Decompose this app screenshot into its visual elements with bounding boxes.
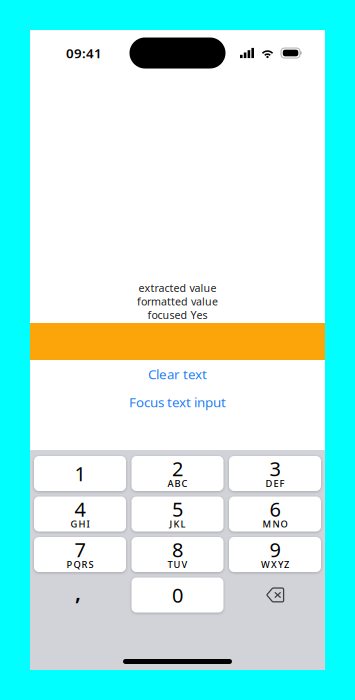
button[interactable]: 2 [131,456,223,491]
button[interactable]: Clear text [30,360,325,388]
button[interactable]: 7 [34,537,126,572]
staticText: GHI [70,518,89,530]
staticText: JKL [169,518,185,530]
staticText: 4 [74,496,85,522]
staticText: 7 [74,536,85,563]
staticText: , [75,578,81,606]
staticText: focused Yes [147,308,207,322]
staticText: formatted value [137,294,218,308]
staticText: PQRS [66,558,93,571]
staticText: MNO [262,518,287,530]
button[interactable]: Focus text input [30,388,325,416]
staticText: ABC [167,477,187,490]
staticText: WXYZ [261,558,289,571]
staticText: 0 [172,582,183,608]
button[interactable]: 4 [34,496,126,531]
staticText: 6 [269,496,280,522]
staticText: Focus text input [129,393,226,411]
button[interactable]: 5 [131,496,223,531]
button[interactable]: Delete [229,577,321,612]
button[interactable]: 8 [131,537,223,572]
staticText: Clear text [148,365,207,383]
staticText: 1 [74,460,85,487]
button[interactable]: 1 [34,456,126,491]
staticText: TUV [167,558,187,571]
staticText: DEF [265,477,284,490]
button[interactable]: , [34,577,126,612]
button[interactable]: 0 [131,577,223,612]
staticText: 2 [172,455,183,482]
staticText: 09:41 [66,44,102,62]
staticText: 9 [269,536,280,563]
staticText: 5 [172,496,183,522]
staticText: 3 [269,455,280,482]
button[interactable]: 6 [229,496,321,531]
staticText: extracted value [138,281,216,295]
button[interactable]: 9 [229,537,321,572]
staticText: 8 [172,536,183,563]
button[interactable]: 3 [229,456,321,491]
